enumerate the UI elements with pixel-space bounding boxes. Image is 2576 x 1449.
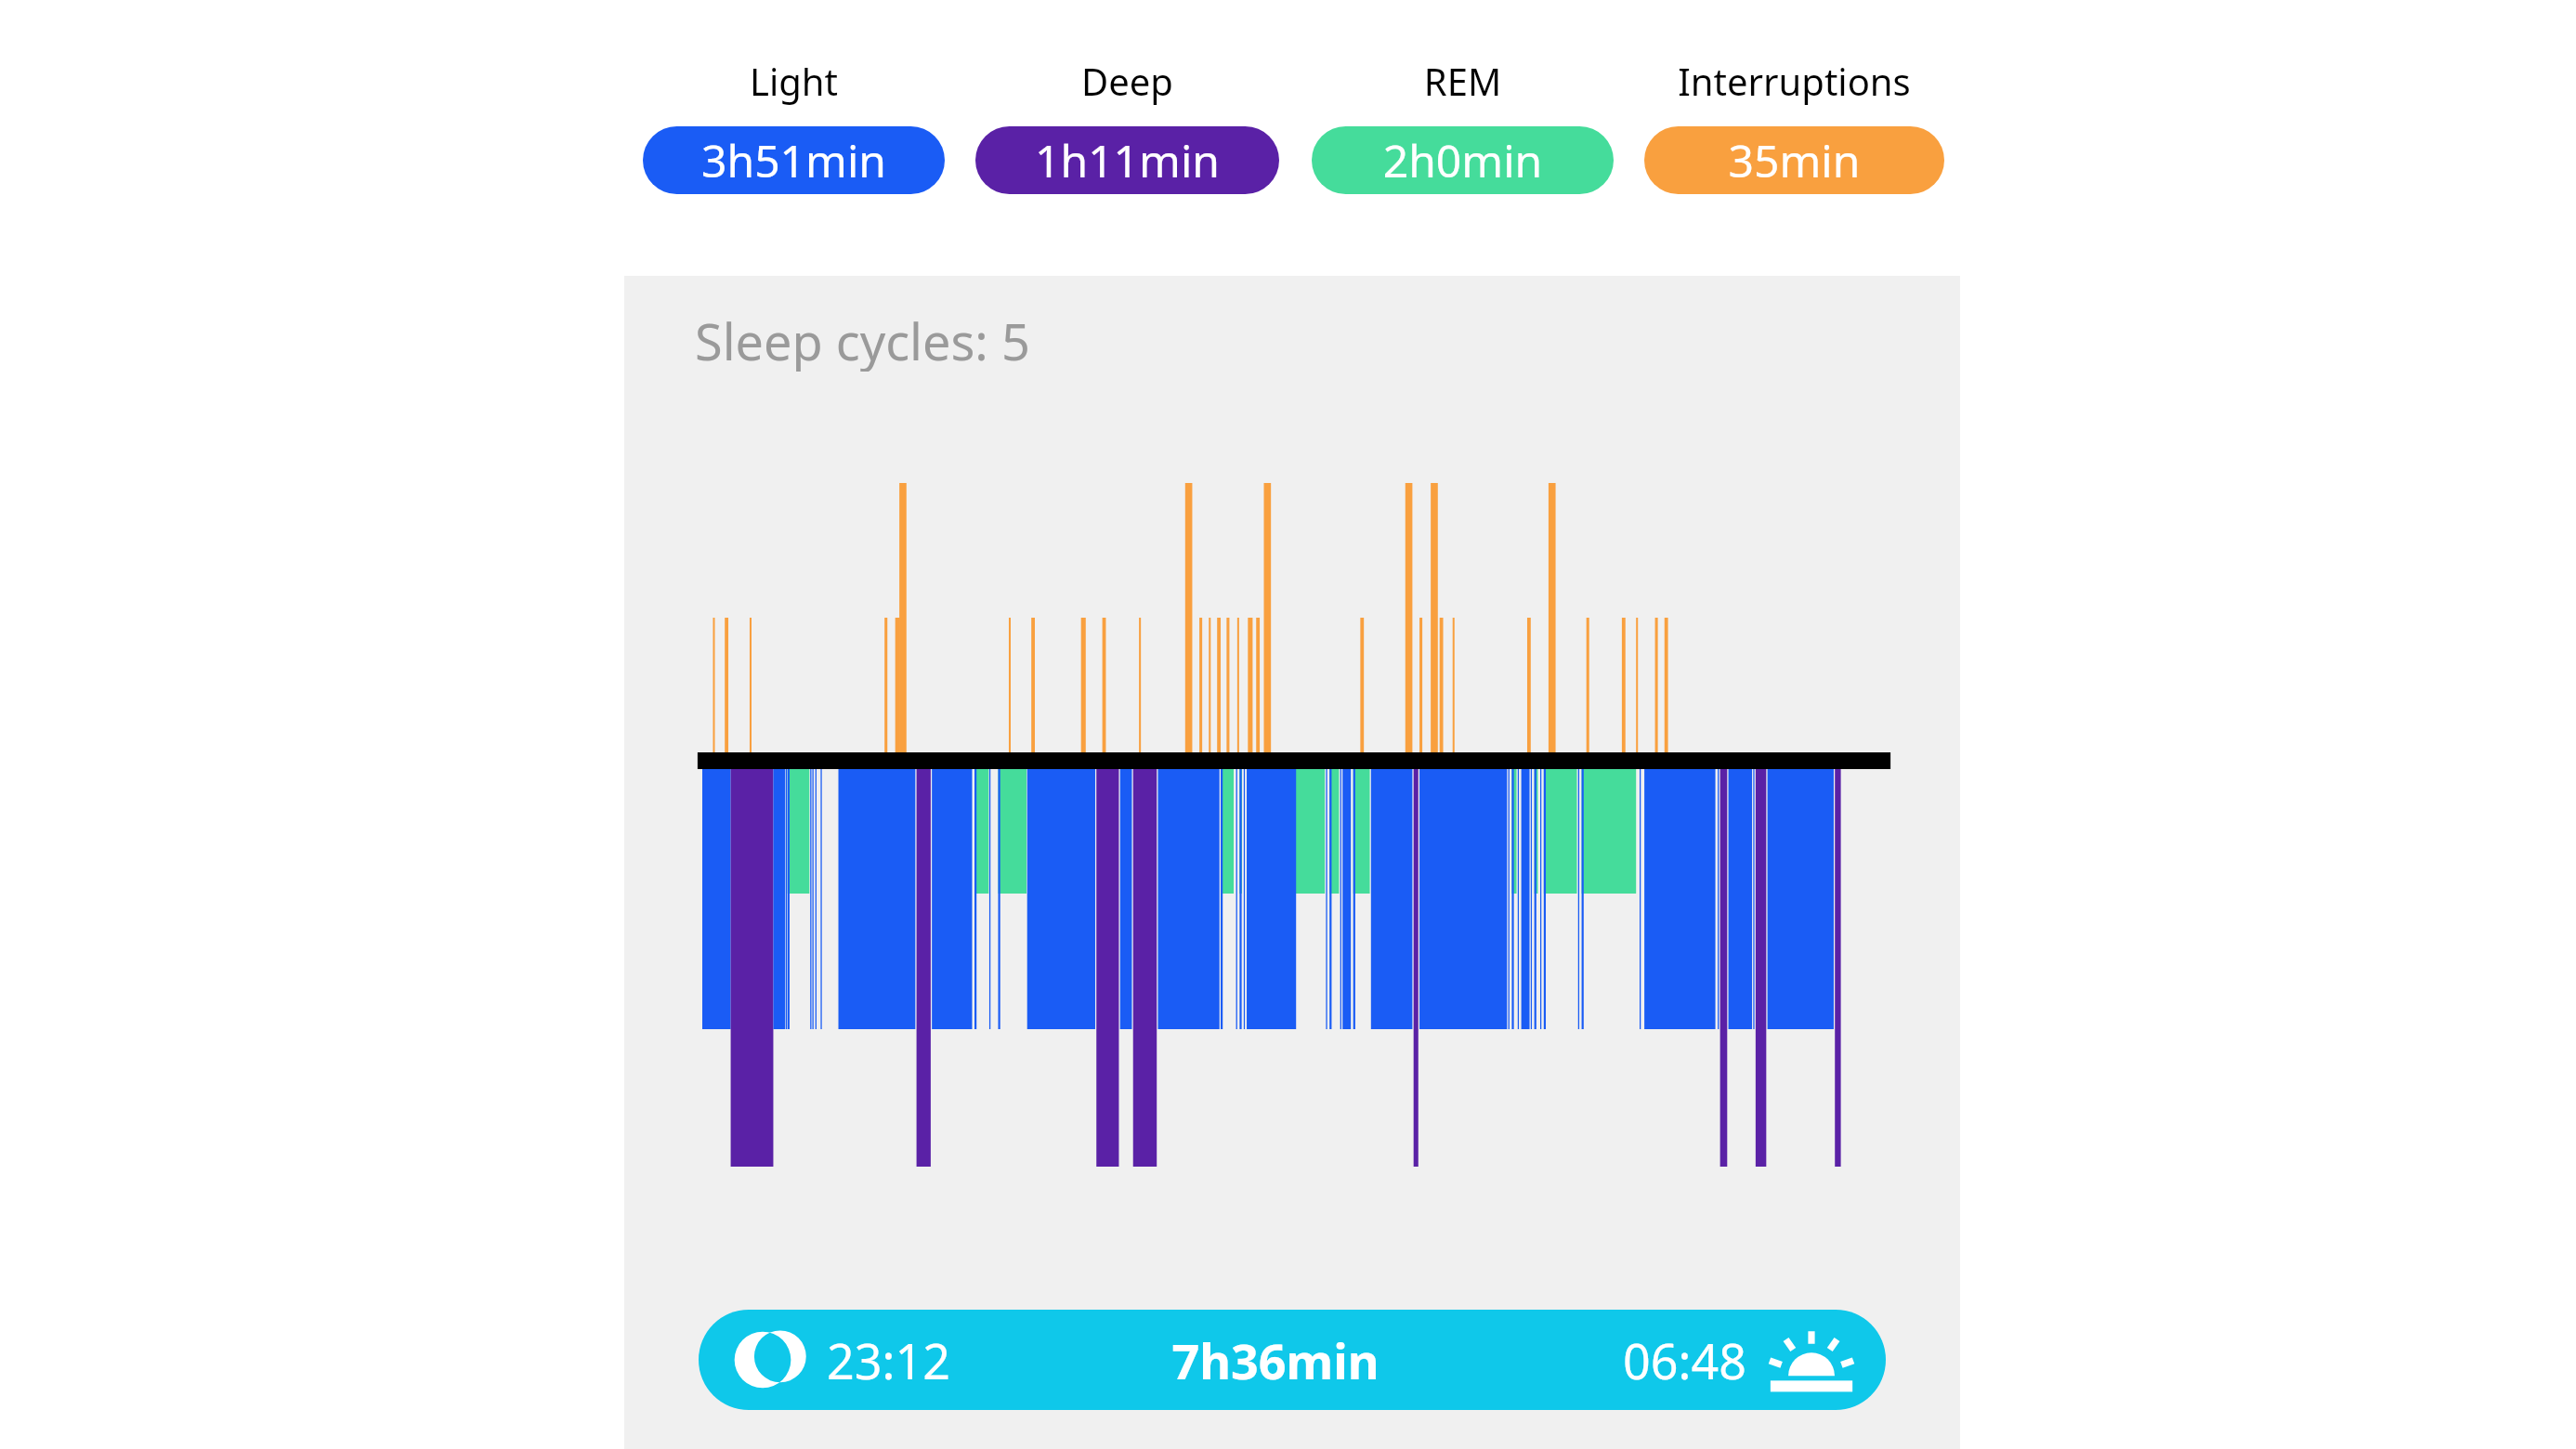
button[interactable]: Deep	[975, 56, 1279, 194]
staticText: 3h51min	[643, 130, 945, 190]
staticText: 1h11min	[975, 130, 1279, 190]
other: Bedtime	[732, 1326, 793, 1393]
button[interactable]: Interruptions	[1644, 56, 1944, 194]
staticText: 06:48	[1514, 1327, 1746, 1393]
staticText: 7h36min	[699, 1327, 1869, 1393]
staticText: REM	[1312, 56, 1614, 106]
staticText: 2h0min	[1312, 130, 1614, 190]
staticText: 35min	[1644, 130, 1944, 190]
staticText: Light	[643, 56, 945, 106]
other: Wake time	[1767, 1320, 1856, 1400]
button[interactable]: Light	[643, 56, 945, 194]
staticText: Deep	[975, 56, 1279, 106]
button[interactable]: REM	[1312, 56, 1614, 194]
button[interactable]: Bedtime	[699, 1310, 1886, 1410]
staticText: Interruptions	[1644, 56, 1944, 106]
staticText: Sleep cycles: 5	[695, 307, 1030, 372]
staticText: 23:12	[827, 1327, 1068, 1393]
